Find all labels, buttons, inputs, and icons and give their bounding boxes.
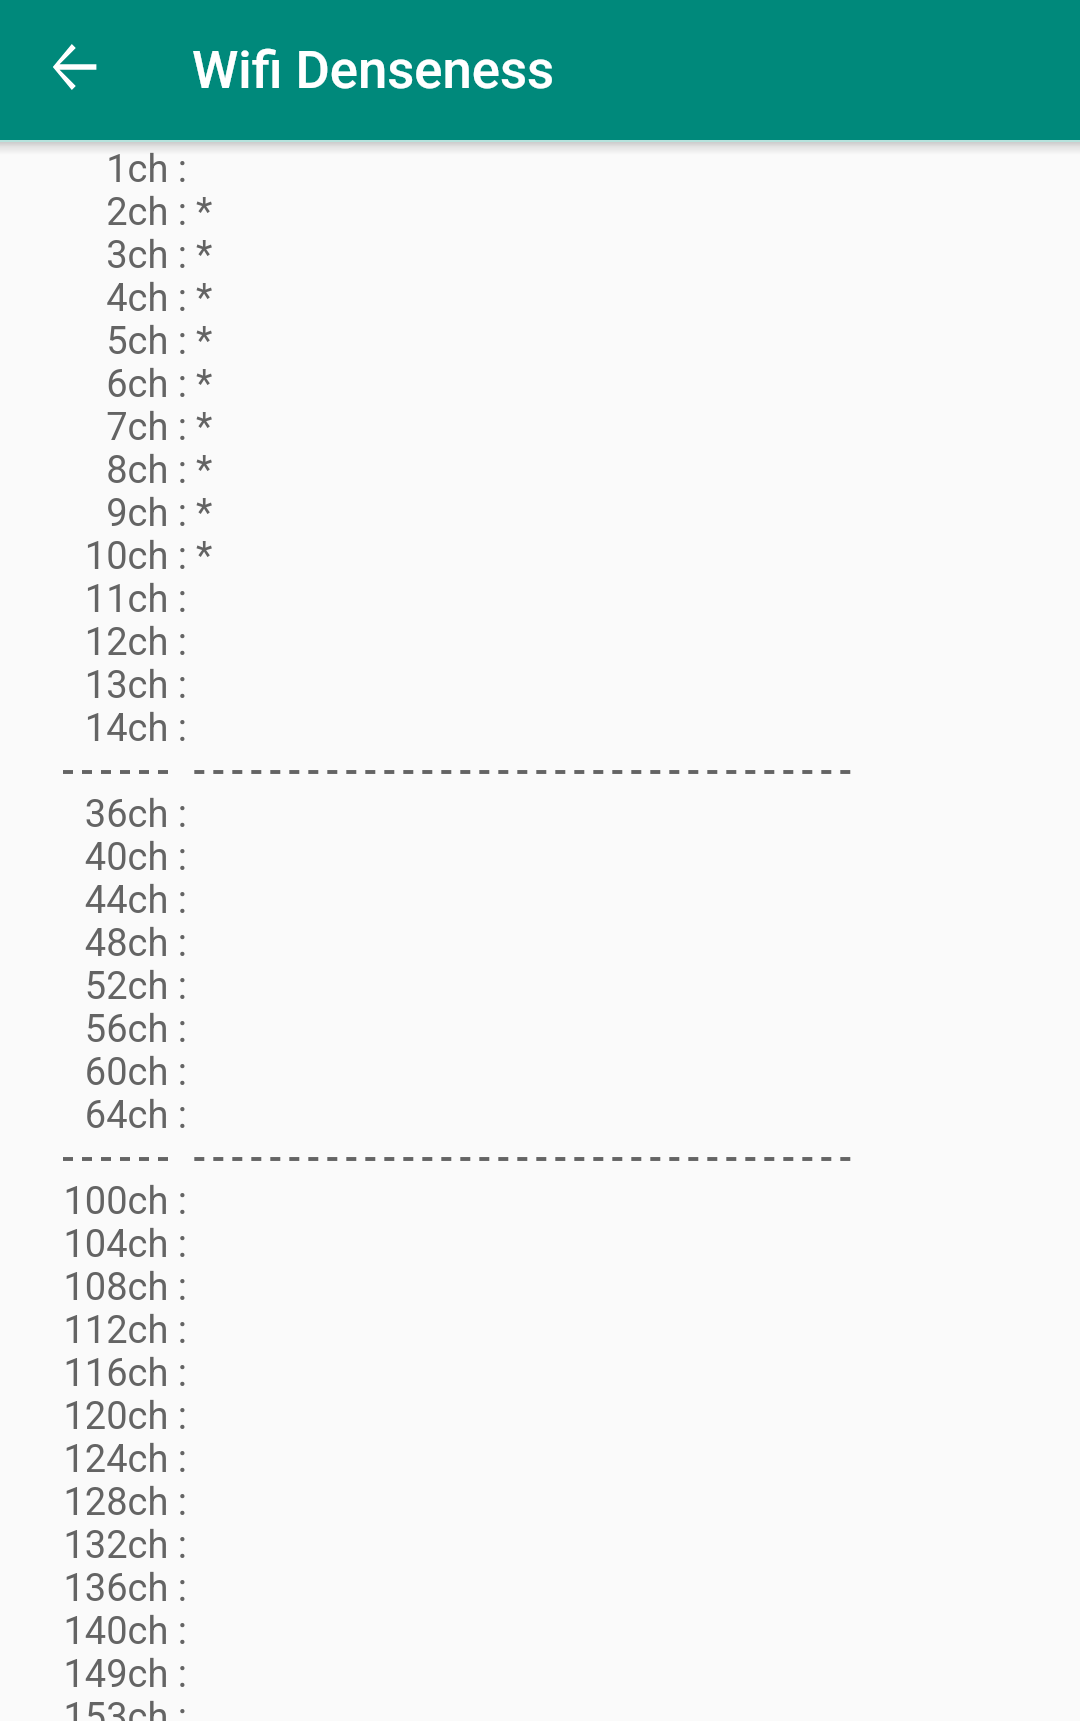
staticText: 120ch :	[0, 1394, 187, 1437]
staticText: *	[196, 276, 213, 319]
staticText: *	[196, 319, 213, 362]
staticText: 7ch :	[0, 405, 187, 448]
staticText: 5ch :	[0, 319, 187, 362]
staticText: 13ch :	[0, 663, 187, 706]
staticText: 108ch :	[0, 1265, 187, 1308]
staticText: 8ch :	[0, 448, 187, 491]
staticText: 104ch :	[0, 1222, 187, 1265]
staticText: 136ch :	[0, 1566, 187, 1609]
staticText: *	[196, 190, 213, 233]
staticText: 132ch :	[0, 1523, 187, 1566]
button[interactable]: Navigate up	[28, 15, 132, 119]
staticText: *	[196, 233, 213, 276]
staticText: 153ch :	[0, 1695, 187, 1721]
staticText: 52ch :	[0, 964, 187, 1007]
staticText: *	[196, 491, 213, 534]
staticText: 1ch :	[0, 147, 187, 190]
staticText: 40ch :	[0, 835, 187, 878]
staticText: 9ch :	[0, 491, 187, 534]
staticText: 64ch :	[0, 1093, 187, 1136]
staticText: *	[196, 405, 213, 448]
staticText: 4ch :	[0, 276, 187, 319]
staticText: 12ch :	[0, 620, 187, 663]
staticText: Wifi Denseness	[192, 39, 555, 101]
staticText: *	[196, 448, 213, 491]
staticText: *	[196, 362, 213, 405]
staticText: 6ch :	[0, 362, 187, 405]
staticText: 140ch :	[0, 1609, 187, 1652]
staticText: 100ch :	[0, 1179, 187, 1222]
staticText: 56ch :	[0, 1007, 187, 1050]
staticText: 11ch :	[0, 577, 187, 620]
staticText: 2ch :	[0, 190, 187, 233]
staticText: 124ch :	[0, 1437, 187, 1480]
staticText: 14ch :	[0, 706, 187, 749]
staticText: *	[196, 534, 213, 577]
staticText: 149ch :	[0, 1652, 187, 1695]
staticText: 44ch :	[0, 878, 187, 921]
staticText: 116ch :	[0, 1351, 187, 1394]
staticText: 3ch :	[0, 233, 187, 276]
staticText: 10ch :	[0, 534, 187, 577]
staticText: 112ch :	[0, 1308, 187, 1351]
staticText: 48ch :	[0, 921, 187, 964]
staticText: 60ch :	[0, 1050, 187, 1093]
staticText: 36ch :	[0, 792, 187, 835]
staticText: 128ch :	[0, 1480, 187, 1523]
